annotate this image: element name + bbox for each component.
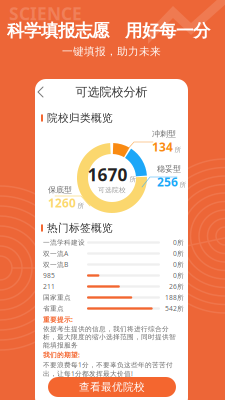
staticText: 可选院校	[98, 186, 126, 194]
staticText: 冲刺型	[152, 129, 176, 139]
staticText: 一键填报，助力未来	[62, 45, 161, 58]
staticText: 26所	[169, 282, 184, 291]
staticText: 院校归类概览	[47, 111, 113, 124]
staticText: 1260	[48, 195, 76, 211]
staticText: 重要提示:	[43, 315, 73, 324]
button[interactable]: 返回	[35, 83, 53, 101]
staticText: 双一流A	[43, 249, 68, 258]
staticText: 所	[77, 202, 84, 210]
staticText: 0所	[173, 271, 184, 280]
staticText: 双一流B	[43, 260, 68, 269]
staticText: 依据考生提供的信息，我们将进行综合分析，最大限度的缩小选择范围，同时提供智能填报…	[43, 325, 176, 349]
staticText: 542所	[165, 304, 184, 313]
staticText: SCIENCE	[9, 2, 82, 25]
staticText: 0所	[173, 249, 184, 258]
staticText: 所	[179, 181, 186, 189]
staticText: 查看最优院校	[79, 380, 145, 393]
staticText: 保底型	[48, 185, 72, 195]
staticText: 0所	[173, 238, 184, 247]
staticText: 一流学科建设	[43, 238, 85, 247]
staticText: 我们的期望:	[43, 350, 80, 359]
staticText: 188所	[165, 293, 184, 302]
staticText: 134	[152, 139, 173, 155]
staticText: 211	[43, 282, 55, 291]
staticText: 用好每一分	[125, 20, 210, 41]
staticText: 985	[43, 271, 55, 280]
staticText: 稳妥型	[157, 164, 181, 174]
staticText: 热门标签概览	[47, 221, 113, 234]
staticText: 国家重点	[43, 293, 71, 302]
staticText: 1670	[87, 163, 127, 186]
staticText: 所	[129, 175, 136, 183]
staticText: 不要浪费每1分，不要辜负这些年的苦苦付出，让每1分都发挥最大价值!	[43, 360, 173, 378]
button[interactable]: 查看最优院校	[48, 377, 176, 397]
staticText: 所	[174, 146, 181, 154]
staticText: 256	[157, 174, 178, 190]
staticText: 可选院校分析	[75, 85, 147, 99]
staticText: 省重点	[43, 304, 64, 313]
staticText: 科学填报志愿	[7, 20, 109, 41]
staticText: 0所	[173, 260, 184, 269]
